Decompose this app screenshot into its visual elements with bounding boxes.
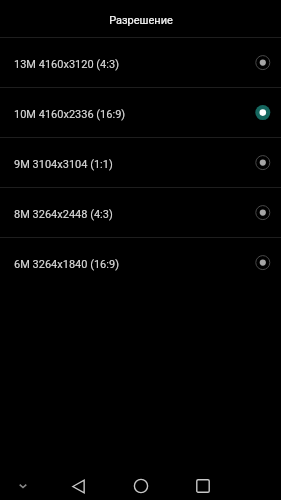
staticText: 8M 3264x2448 (4:3) [14,208,254,221]
staticText: 9M 3104x3104 (1:1) [14,158,254,171]
button[interactable]: Recent apps [187,470,219,500]
staticText: Разрешение [109,14,173,27]
staticText: 10M 4160x2336 (16:9) [14,108,254,121]
button[interactable]: 8M 3264x2448 (4:3) [0,188,281,238]
button[interactable]: 9M 3104x3104 (1:1) [0,138,281,188]
button[interactable]: 10M 4160x2336 (16:9) [0,88,281,138]
button[interactable]: 13M 4160x3120 (4:3) [0,38,281,88]
button[interactable]: Hide keyboard [13,476,33,496]
button[interactable]: Back [62,470,94,500]
button[interactable]: Home [125,470,157,500]
staticText: 6M 3264x1840 (16:9) [14,258,254,271]
staticText: 13M 4160x3120 (4:3) [14,58,254,71]
button[interactable]: 6M 3264x1840 (16:9) [0,238,281,288]
